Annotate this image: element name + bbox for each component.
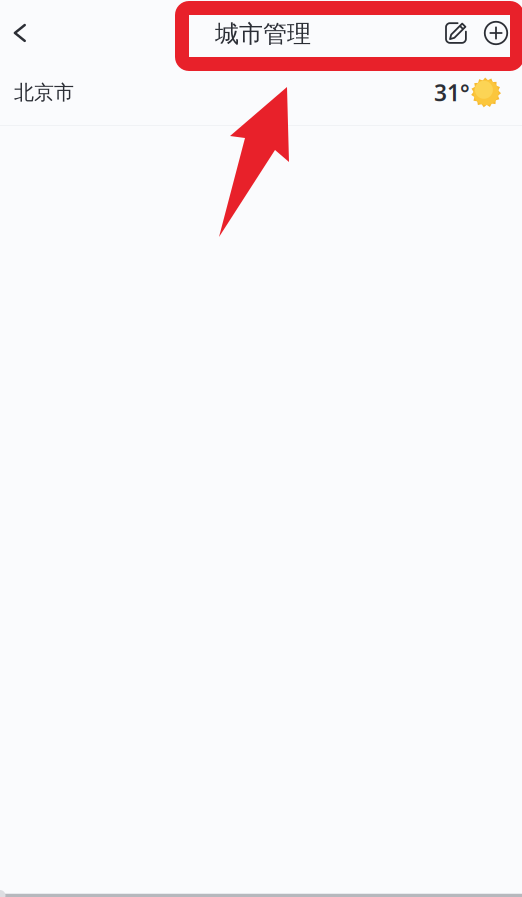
staticText: 城市管理 — [215, 19, 311, 49]
staticText: 北京市 — [14, 80, 74, 105]
button[interactable]: 北京市 — [0, 66, 522, 119]
button[interactable]: Back — [0, 5, 43, 61]
button[interactable]: Edit cities — [437, 9, 475, 57]
button[interactable]: Add city — [477, 9, 515, 57]
staticText: 31° — [434, 77, 470, 107]
